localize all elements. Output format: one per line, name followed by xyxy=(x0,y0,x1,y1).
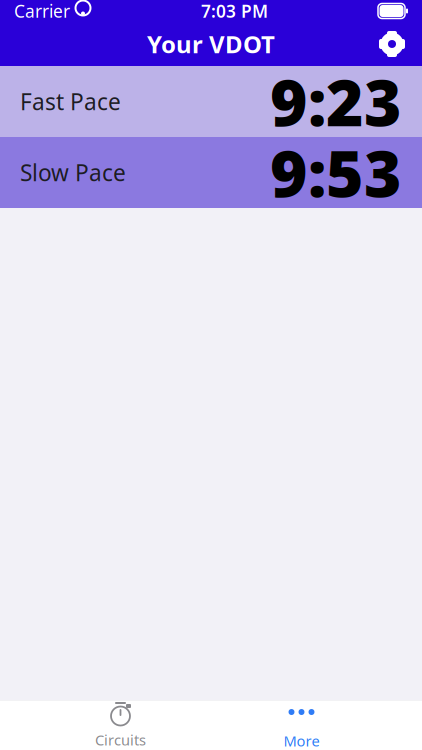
staticText: 9:23 xyxy=(270,59,402,144)
staticText: More xyxy=(283,731,319,750)
staticText: Circuits xyxy=(95,730,146,749)
staticText: 7:03 PM xyxy=(201,0,268,22)
staticText: 9:53 xyxy=(270,130,402,215)
button[interactable]: More xyxy=(211,701,392,750)
button[interactable]: Fast Pace xyxy=(0,66,422,137)
staticText: Slow Pace xyxy=(20,157,126,187)
staticText: Carrier xyxy=(14,0,70,22)
staticText: Fast Pace xyxy=(20,86,121,116)
button[interactable]: Circuits xyxy=(30,701,211,750)
button[interactable]: Settings xyxy=(370,22,414,66)
staticText: Your VDOT xyxy=(147,28,275,60)
button[interactable]: Slow Pace xyxy=(0,137,422,208)
